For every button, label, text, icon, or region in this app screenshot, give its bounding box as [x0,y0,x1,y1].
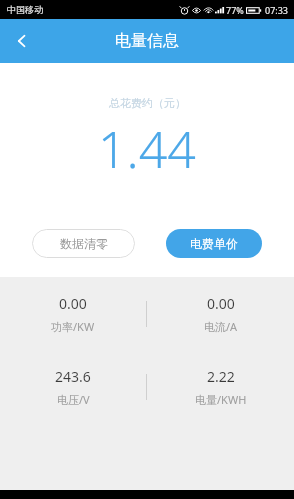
button[interactable]: 0.00 [0,277,146,350]
staticText: 电流/A [204,319,238,334]
button[interactable]: 243.6 [0,350,146,423]
staticText: 07:33 [265,4,289,16]
staticText: 总花费约（元） [109,96,186,110]
staticText: 电费单价 [190,236,238,251]
button[interactable]: 2.22 [147,350,294,423]
staticText: 0.00 [59,294,87,313]
staticText: 77% [226,4,244,16]
staticText: 数据清零 [60,236,108,251]
staticText: 电压/V [57,392,90,407]
staticText: 2.22 [207,367,235,386]
staticText: 电量信息 [115,31,179,51]
staticText: 功率/KW [51,319,95,334]
staticText: 中国移动 [7,4,43,15]
staticText: 电量/KWH [195,392,247,407]
button[interactable]: 电费单价 [166,229,262,258]
staticText: 0.00 [207,294,235,313]
staticText: 1.44 [98,115,196,183]
button[interactable]: Back [0,19,44,63]
button[interactable]: 0.00 [147,277,294,350]
staticText: 243.6 [55,367,91,386]
button[interactable]: 数据清零 [32,229,135,258]
